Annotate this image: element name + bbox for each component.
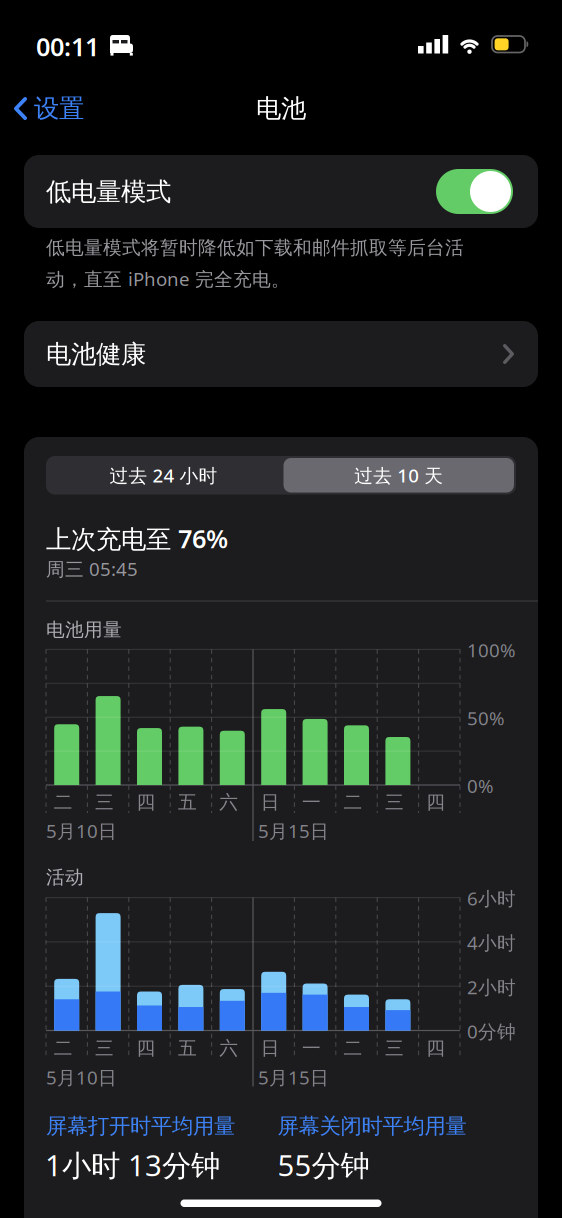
button[interactable]: 过去 24 小时 [47, 456, 280, 494]
staticText: 过去 10 天 [354, 463, 443, 488]
staticText: 三 [385, 1037, 404, 1060]
staticText: 周三 05:45 [46, 556, 138, 581]
staticText: 二 [54, 1037, 73, 1060]
staticText: 5月15日 [258, 818, 329, 843]
staticText: 三 [95, 791, 114, 814]
button[interactable]: 低电量模式 [436, 169, 513, 214]
staticText: 活动 [46, 866, 84, 889]
staticText: 三 [95, 1037, 114, 1060]
staticText: 五 [178, 791, 197, 814]
staticText: 00:11 [36, 30, 99, 63]
staticText: 过去 24 小时 [109, 463, 217, 488]
staticText: 二 [343, 1037, 362, 1060]
staticText: 100% [467, 638, 516, 662]
staticText: 5月10日 [46, 818, 117, 843]
staticText: 上次充电至 76% [46, 522, 228, 555]
staticText: 二 [343, 791, 362, 814]
staticText: 屏幕打开时平均用量 [46, 1113, 235, 1139]
staticText: 电池用量 [46, 618, 122, 641]
staticText: 55分钟 [277, 1145, 369, 1184]
staticText: 5月10日 [46, 1065, 117, 1090]
staticText: 六 [219, 1037, 238, 1060]
staticText: 电池 [256, 93, 306, 124]
staticText: 五 [178, 1037, 197, 1060]
staticText: 二 [54, 791, 73, 814]
staticText: 一 [302, 1037, 321, 1060]
staticText: 一 [302, 791, 321, 814]
staticText: 四 [136, 791, 155, 814]
staticText: 设置 [34, 93, 84, 124]
staticText: 6小时 [467, 886, 516, 911]
staticText: 动，直至 iPhone 完全充电。 [46, 266, 290, 291]
staticText: 六 [219, 791, 238, 814]
staticText: 三 [385, 791, 404, 814]
staticText: 5月15日 [258, 1065, 329, 1090]
button[interactable]: 过去 10 天 [283, 458, 514, 492]
staticText: 四 [426, 791, 445, 814]
staticText: 低电量模式将暂时降低如下载和邮件抓取等后台活 [46, 236, 464, 259]
staticText: 日 [261, 791, 280, 814]
staticText: 0% [467, 773, 494, 798]
staticText: 电池健康 [46, 339, 146, 370]
staticText: 0分钟 [467, 1019, 516, 1044]
staticText: 50% [467, 705, 505, 730]
button[interactable]: 返回设置 [14, 93, 84, 124]
staticText: 四 [136, 1037, 155, 1060]
staticText: 屏幕关闭时平均用量 [277, 1113, 466, 1139]
staticText: 四 [426, 1037, 445, 1060]
staticText: 2小时 [467, 974, 516, 999]
staticText: 1小时 13分钟 [45, 1145, 220, 1184]
staticText: 4小时 [467, 930, 516, 955]
button[interactable]: 电池健康 [24, 321, 538, 387]
staticText: 低电量模式 [46, 176, 171, 207]
staticText: 日 [261, 1037, 280, 1060]
